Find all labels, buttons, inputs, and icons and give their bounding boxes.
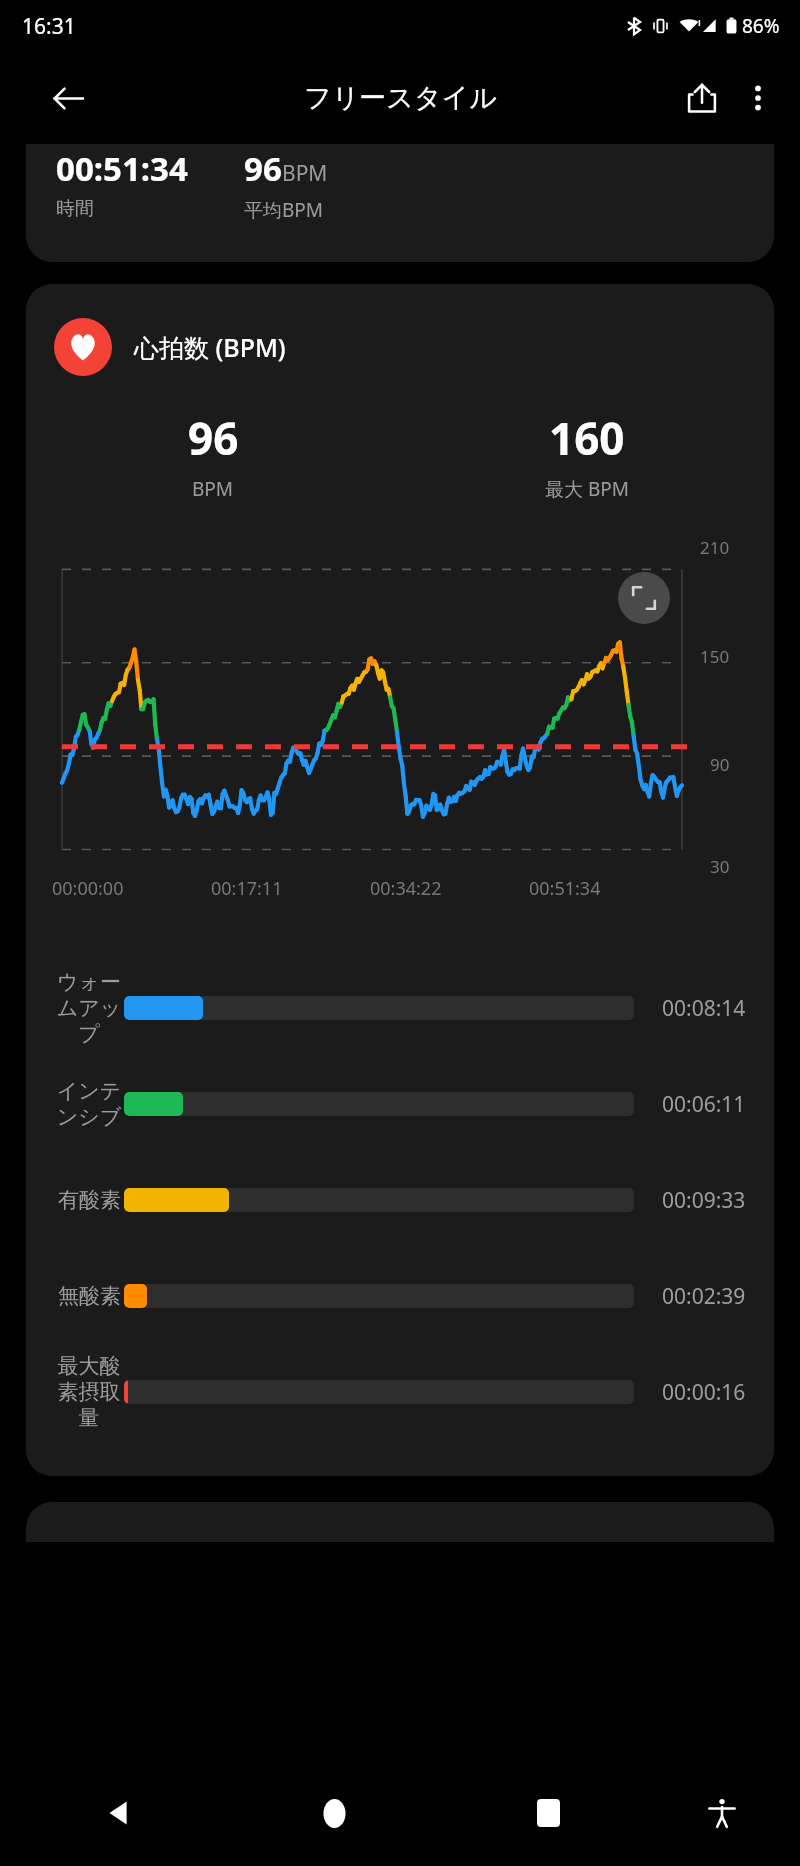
- staticText: 00:09:33: [662, 1186, 746, 1215]
- button[interactable]: More options: [730, 70, 786, 126]
- staticText: 160: [549, 408, 625, 468]
- staticText: 16:31: [22, 12, 76, 41]
- staticText: 平均BPM: [244, 197, 324, 223]
- staticText: 時間: [56, 197, 94, 221]
- staticText: 00:00:00: [52, 876, 124, 901]
- staticText: 有酸素: [58, 1187, 121, 1213]
- staticText: 00:17:11: [211, 876, 283, 901]
- button[interactable]: Expand chart: [618, 572, 670, 624]
- staticText: ウォームアップ: [54, 969, 124, 1048]
- staticText: 00:00:16: [662, 1378, 746, 1407]
- button[interactable]: Accessibility: [655, 1760, 788, 1866]
- staticText: 00:34:22: [370, 876, 442, 901]
- button[interactable]: 心拍数 (BPM): [26, 284, 774, 1476]
- staticText: 86%: [742, 13, 780, 39]
- staticText: 00:51:34: [529, 876, 601, 901]
- staticText: 150: [700, 645, 730, 668]
- button[interactable]: ウォームアップ: [26, 960, 774, 1056]
- staticText: 00:02:39: [662, 1282, 746, 1311]
- button[interactable]: Back: [12, 1760, 227, 1866]
- button[interactable]: Share: [674, 70, 730, 126]
- staticText: 最大 BPM: [545, 476, 630, 502]
- button[interactable]: Recent apps: [441, 1760, 655, 1866]
- staticText: 無酸素: [58, 1283, 121, 1309]
- button[interactable]: Home: [227, 1760, 441, 1866]
- button[interactable]: 最大酸素摂取量: [26, 1344, 774, 1440]
- staticText: インテンシブ: [54, 1078, 124, 1131]
- staticText: 00:51:34: [56, 146, 188, 191]
- button[interactable]: インテンシブ: [26, 1056, 774, 1152]
- button[interactable]: Back: [42, 72, 94, 124]
- staticText: 00:08:14: [662, 994, 746, 1023]
- staticText: 心拍数 (BPM): [134, 330, 286, 364]
- staticText: 30: [710, 855, 730, 878]
- staticText: フリースタイル: [304, 81, 497, 115]
- staticText: 00:06:11: [662, 1090, 746, 1119]
- button[interactable]: 00:51:34: [26, 144, 774, 262]
- staticText: 96: [188, 408, 239, 468]
- staticText: BPM: [282, 159, 328, 188]
- staticText: 最大酸素摂取量: [54, 1353, 124, 1432]
- staticText: 96: [244, 146, 282, 191]
- button[interactable]: 無酸素: [26, 1248, 774, 1344]
- staticText: 90: [710, 753, 730, 776]
- button[interactable]: 有酸素: [26, 1152, 774, 1248]
- staticText: 210: [700, 536, 730, 559]
- staticText: BPM: [192, 476, 234, 502]
